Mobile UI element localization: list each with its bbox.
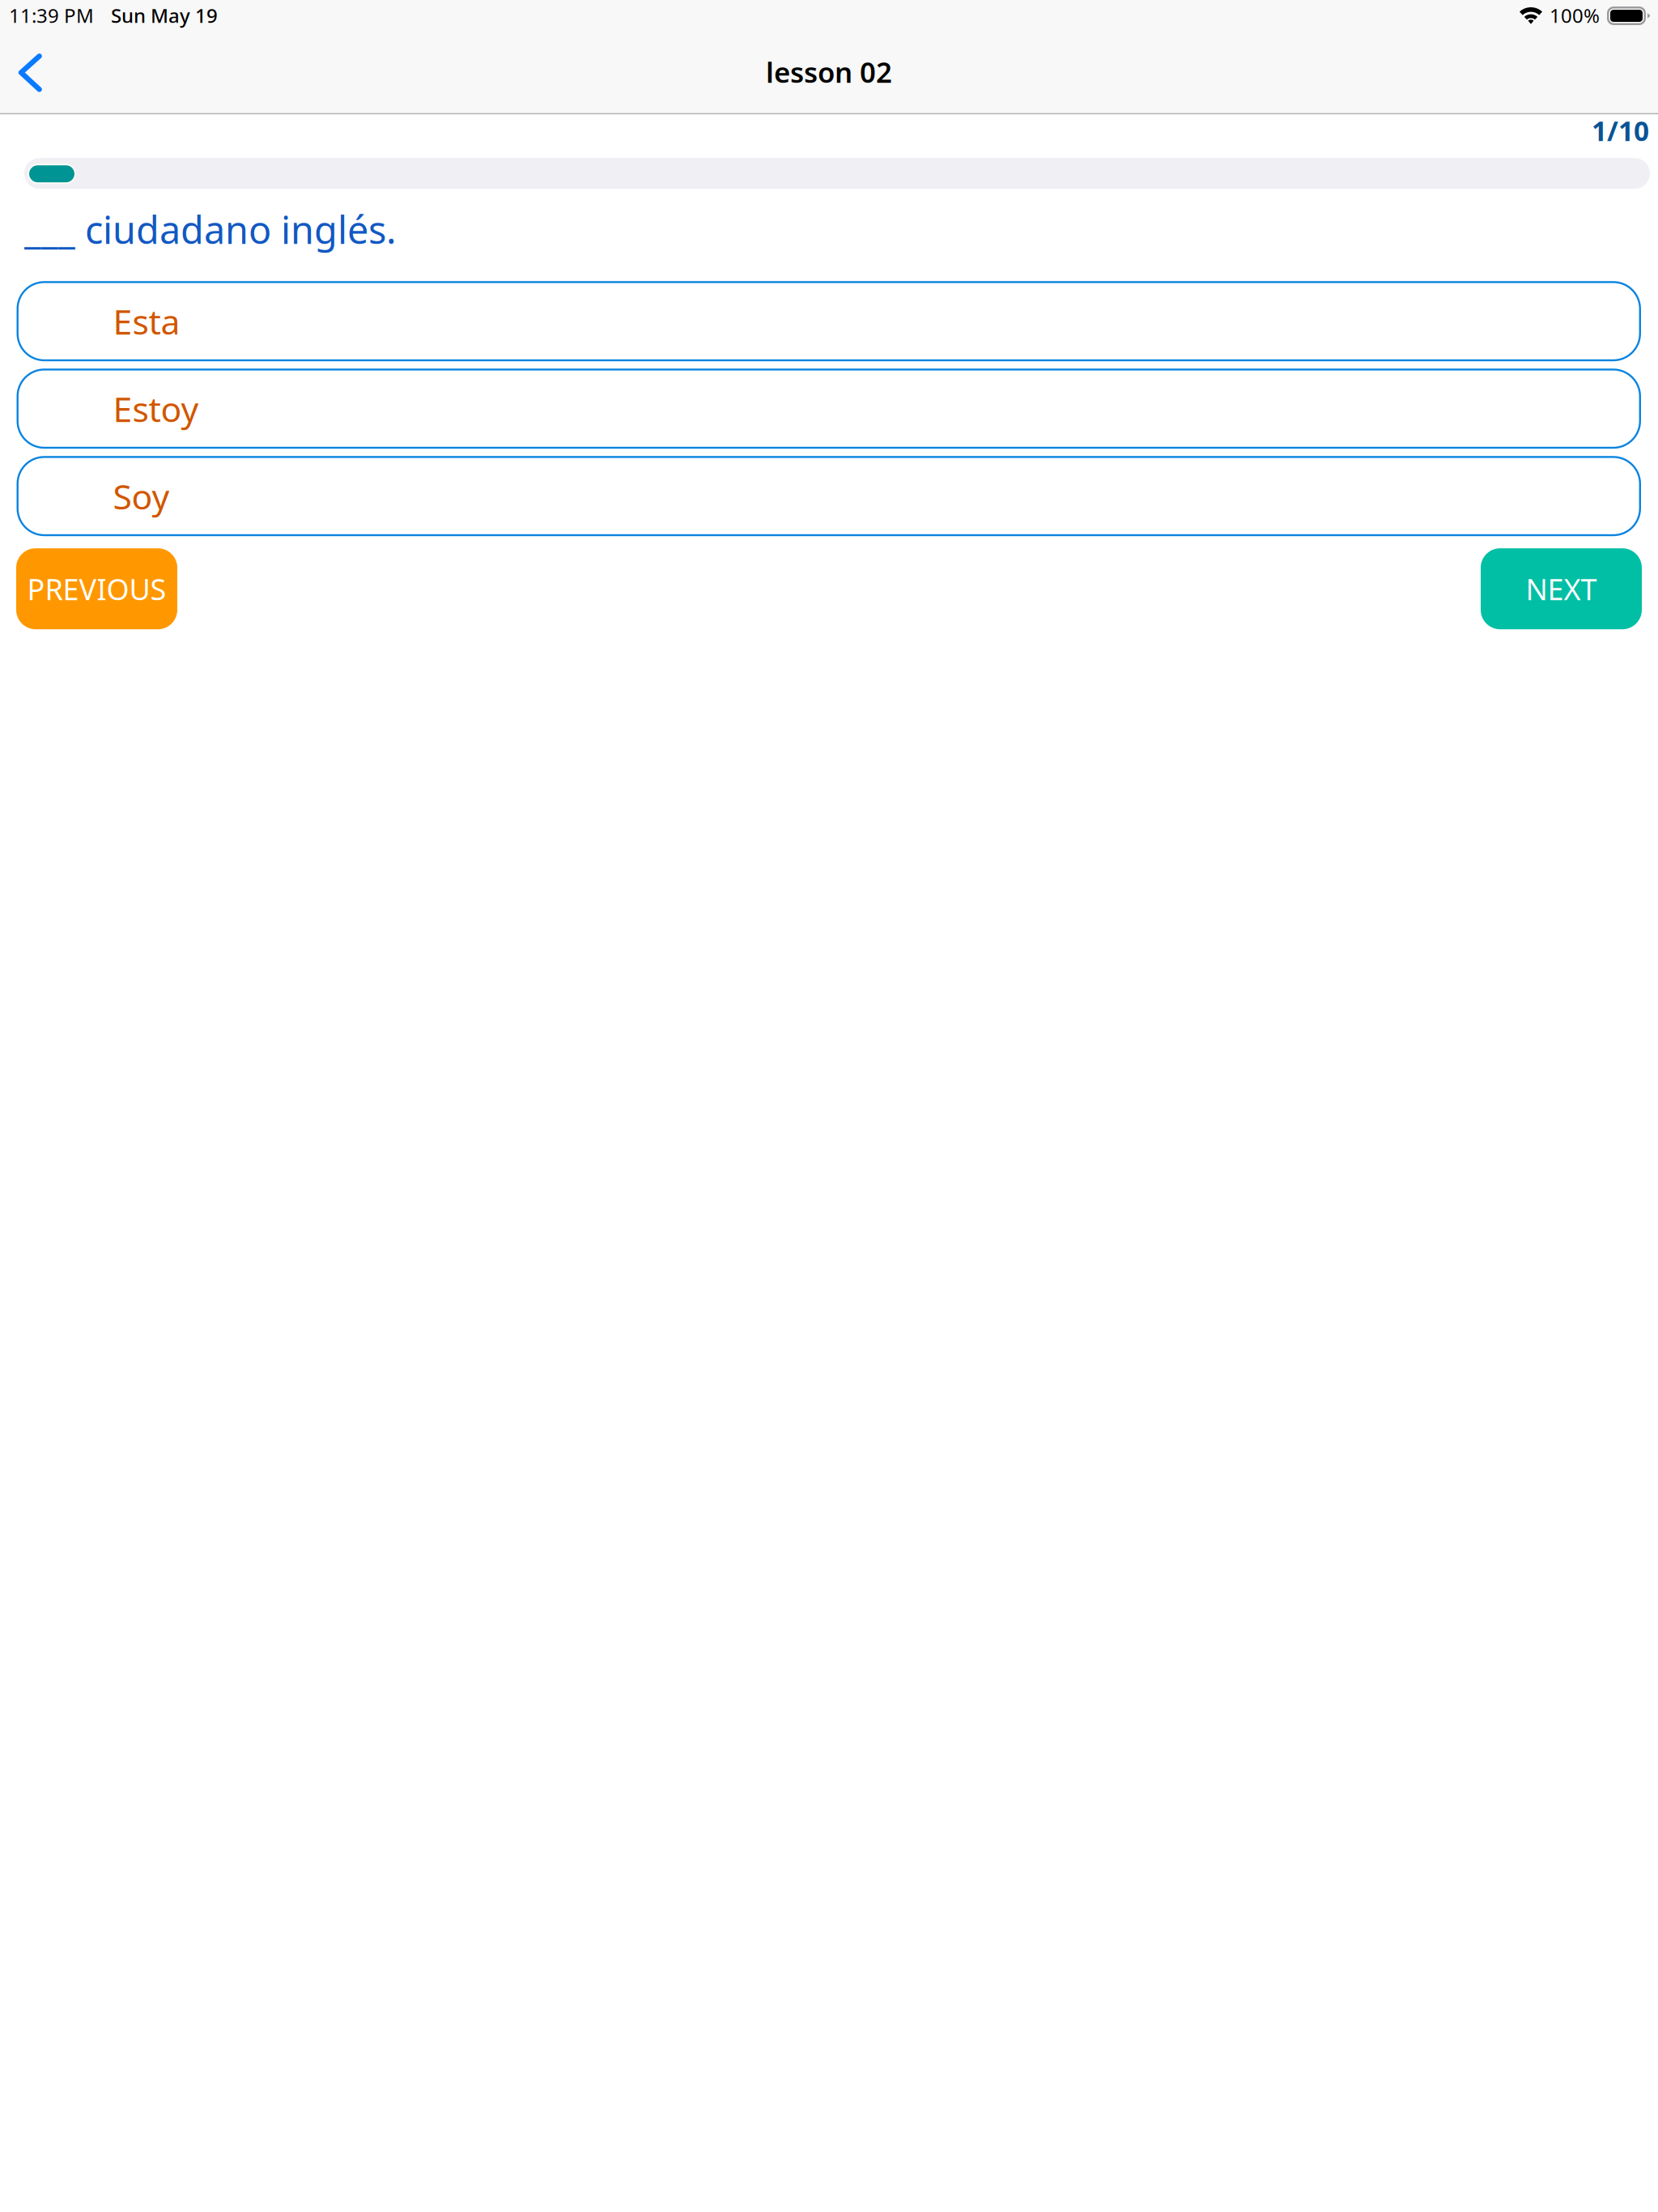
button[interactable]: Back bbox=[5, 40, 62, 113]
button[interactable]: Esta bbox=[17, 281, 1641, 361]
staticText: lesson 02 bbox=[766, 53, 892, 91]
staticText: Sun May 19 bbox=[111, 2, 218, 28]
staticText: Estoy bbox=[113, 386, 199, 432]
staticText: 100% bbox=[1550, 2, 1600, 28]
staticText: ___ ciudadano inglés. bbox=[24, 204, 397, 254]
staticText: Esta bbox=[113, 298, 180, 344]
staticText: Soy bbox=[113, 473, 170, 519]
button[interactable]: NEXT bbox=[1481, 548, 1642, 629]
staticText: NEXT bbox=[1526, 569, 1597, 608]
staticText: PREVIOUS bbox=[27, 569, 166, 608]
staticText: 11:39 PM bbox=[9, 2, 94, 28]
button[interactable]: PREVIOUS bbox=[16, 548, 177, 629]
staticText: 1/10 bbox=[1592, 113, 1649, 149]
button[interactable]: Estoy bbox=[17, 369, 1641, 449]
button[interactable]: Soy bbox=[17, 456, 1641, 536]
